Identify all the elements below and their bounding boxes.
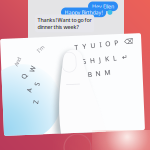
staticText: G H J K L ↵ [82, 56, 129, 65]
staticText: S [35, 78, 39, 87]
staticText: Happy Birthday! [65, 9, 103, 16]
staticText: A [27, 84, 31, 93]
staticText: Hey Ellen [92, 3, 114, 10]
staticText: W [30, 63, 36, 72]
staticText: And [14, 56, 23, 63]
staticText: B N M [88, 70, 111, 79]
staticText: I'm [38, 44, 46, 51]
staticText: T Y U I O P ⌫ [76, 41, 135, 50]
staticText: Q [22, 70, 27, 79]
staticText: Z [33, 96, 37, 105]
staticText: Thanks! Want to go for dinner this week? [38, 16, 92, 30]
